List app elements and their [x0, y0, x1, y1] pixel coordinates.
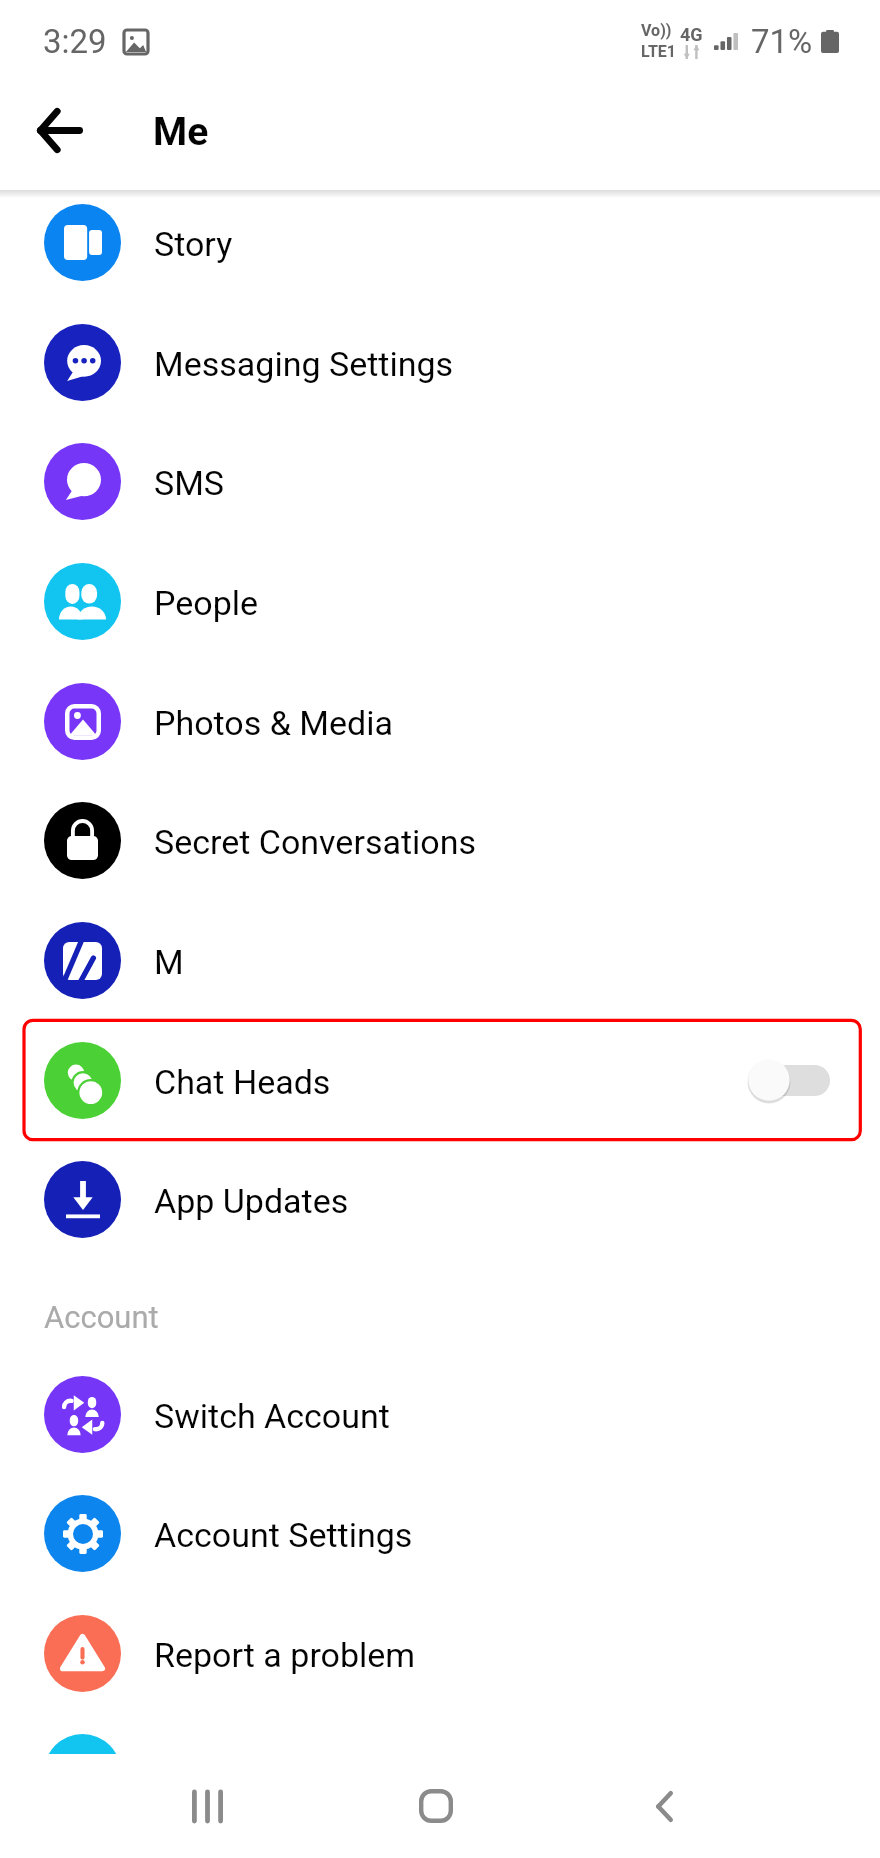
- staticText: Me: [153, 109, 209, 155]
- button[interactable]: SMS: [0, 421, 880, 541]
- staticText: Photos & Media: [154, 703, 393, 743]
- staticText: People: [154, 583, 259, 623]
- button[interactable]: People: [0, 541, 880, 661]
- button[interactable]: Messaging Settings: [0, 302, 880, 422]
- staticText: M: [154, 942, 184, 982]
- staticText: 3:29: [43, 22, 107, 61]
- staticText: Secret Conversations: [154, 822, 477, 862]
- button[interactable]: Story: [0, 190, 880, 302]
- staticText: Chat Heads: [154, 1062, 331, 1102]
- button[interactable]: Back: [620, 1762, 708, 1850]
- button[interactable]: Photos & Media: [0, 661, 880, 781]
- button[interactable]: Report a problem: [0, 1593, 880, 1713]
- button[interactable]: Recent apps: [163, 1762, 251, 1850]
- staticText: Story: [154, 224, 233, 264]
- button[interactable]: Back: [14, 84, 106, 176]
- staticText: Vo)): [641, 21, 672, 40]
- button[interactable]: Home: [392, 1762, 480, 1850]
- staticText: Account: [44, 1299, 159, 1335]
- staticText: LTE1: [641, 42, 676, 61]
- button[interactable]: Account Settings: [0, 1473, 880, 1593]
- staticText: Report a problem: [154, 1635, 416, 1675]
- staticText: Account Settings: [154, 1515, 413, 1555]
- button[interactable]: App Updates: [0, 1139, 880, 1259]
- button[interactable]: Chat Heads toggle, off: [746, 1057, 830, 1103]
- staticText: Switch Account: [154, 1396, 390, 1436]
- staticText: App Updates: [154, 1181, 349, 1221]
- button[interactable]: Chat Heads: [0, 1020, 880, 1140]
- button[interactable]: Switch Account: [0, 1354, 880, 1474]
- staticText: 71%: [751, 22, 813, 61]
- staticText: 4G: [680, 24, 703, 45]
- button[interactable]: Help: [0, 1712, 880, 1754]
- button[interactable]: Secret Conversations: [0, 780, 880, 900]
- staticText: SMS: [154, 463, 225, 503]
- button[interactable]: M: [0, 900, 880, 1020]
- staticText: Messaging Settings: [154, 344, 454, 384]
